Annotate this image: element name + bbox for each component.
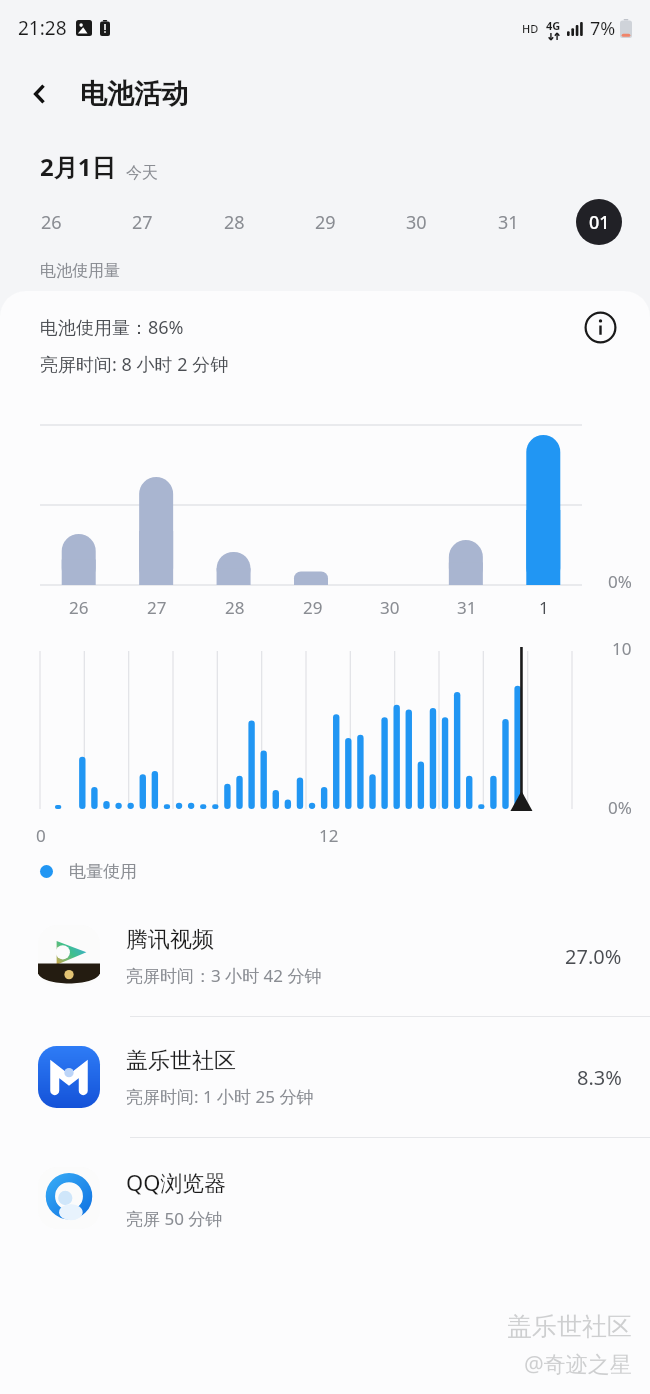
staticText: HD xyxy=(522,21,539,36)
staticText: 27 xyxy=(132,210,153,235)
button[interactable]: 27 xyxy=(119,199,165,245)
staticText: 2月1日 xyxy=(40,150,116,183)
staticText: 31 xyxy=(457,596,477,619)
staticText: 0 xyxy=(36,824,46,847)
staticText: 今天 xyxy=(126,163,158,183)
staticText: 27 xyxy=(147,596,167,619)
staticText: 电池活动 xyxy=(80,77,188,111)
staticText: 30 xyxy=(380,596,400,619)
staticText: 28 xyxy=(224,210,245,235)
staticText: 12 xyxy=(319,824,339,847)
staticText: 01 xyxy=(589,210,610,235)
staticText: 电池使用量：86% xyxy=(40,315,184,340)
staticText: 26 xyxy=(69,596,89,619)
button[interactable]: 28 xyxy=(211,199,257,245)
staticText: 0% xyxy=(608,570,632,593)
staticText: 26 xyxy=(41,210,62,235)
staticText: 28 xyxy=(225,596,245,619)
staticText: 4G xyxy=(546,18,561,33)
button[interactable]: 30 xyxy=(393,199,439,245)
staticText: 7% xyxy=(590,16,616,41)
staticText: 电量使用 xyxy=(69,861,137,882)
staticText: 盖乐世社区 xyxy=(126,1047,236,1075)
staticText: 29 xyxy=(303,596,323,619)
button[interactable]: 盖乐世社区 xyxy=(0,1017,650,1138)
button[interactable]: 29 xyxy=(302,199,348,245)
staticText: 30 xyxy=(406,210,427,235)
button[interactable]: Back xyxy=(14,68,66,120)
button[interactable]: Info xyxy=(578,305,622,349)
staticText: QQ浏览器 xyxy=(126,1167,227,1197)
staticText: 亮屏时间：3 小时 42 分钟 xyxy=(126,964,322,987)
staticText: 亮屏 50 分钟 xyxy=(126,1207,223,1230)
staticText: 21:28 xyxy=(18,15,67,41)
staticText: 亮屏时间: 8 小时 2 分钟 xyxy=(40,352,229,377)
staticText: 电池使用量 xyxy=(40,261,120,281)
staticText: 盖乐世社区 xyxy=(507,1311,632,1342)
staticText: 10 xyxy=(612,637,632,660)
button[interactable]: 01 xyxy=(576,199,622,245)
button[interactable]: 腾讯视频 xyxy=(0,896,650,1017)
staticText: 29 xyxy=(315,210,336,235)
staticText: 亮屏时间: 1 小时 25 分钟 xyxy=(126,1085,314,1108)
button[interactable]: QQ浏览器 xyxy=(0,1138,650,1258)
staticText: 1 xyxy=(539,596,549,619)
staticText: 31 xyxy=(498,210,519,235)
staticText: @奇迹之星 xyxy=(524,1348,632,1378)
staticText: 腾讯视频 xyxy=(126,926,214,954)
button[interactable]: 26 xyxy=(28,199,74,245)
staticText: 27.0% xyxy=(565,943,622,970)
staticText: 0% xyxy=(608,796,632,819)
staticText: 8.3% xyxy=(577,1064,622,1091)
button[interactable]: 31 xyxy=(485,199,531,245)
